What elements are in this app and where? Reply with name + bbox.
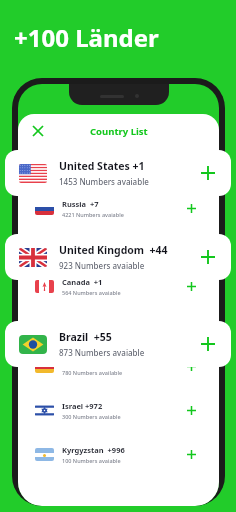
staticText: 1453 Numbers avaiable [59,176,149,187]
button[interactable]: United Kingdom +44 [5,234,231,280]
staticText: 873 Numbers avaiable [59,347,145,358]
staticText: 923 Numbers avaiable [59,260,145,271]
button[interactable]: Russia +7 [27,190,210,226]
staticText: 780 Numbers available [62,369,123,376]
button[interactable]: Israel +972 [27,392,210,428]
staticText: Israel +972 [62,401,103,411]
staticText: Russia +7 [62,199,99,209]
button[interactable]: Close [26,119,50,143]
staticText: Kyrgyzstan +996 [62,445,125,455]
staticText: United States +1 [59,159,145,173]
staticText: Country List [90,125,148,138]
button[interactable]: Canada +1 [27,268,210,304]
button[interactable]: Brazil +55 [5,321,231,367]
staticText: 564 Numbers avaiable [62,289,121,296]
staticText: United Kingdom +44 [59,243,168,257]
button[interactable]: Germany +49 [27,348,210,384]
button[interactable]: United States +1 [5,150,231,196]
staticText: Brazil +55 [59,330,112,344]
button[interactable]: Kyrgyzstan +996 [27,436,210,472]
staticText: 100 Numbers avaiable [62,457,121,464]
staticText: +100 Länder [14,21,159,54]
staticText: 4221 Numbers avaiable [62,211,124,218]
staticText: 300 Numbers avaiable [62,413,121,420]
staticText: Canada +1 [62,277,103,287]
